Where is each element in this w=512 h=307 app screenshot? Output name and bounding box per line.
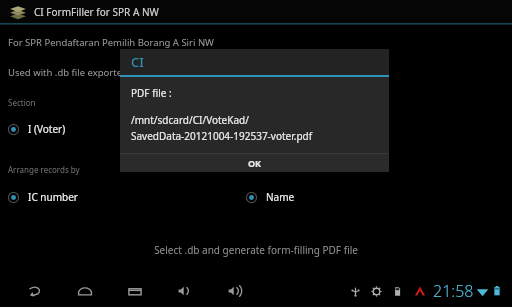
staticText: For SPR Pendaftaran Pemilih Borang A Sir… bbox=[8, 36, 214, 49]
staticText: PDF file : bbox=[131, 86, 172, 100]
button[interactable]: Volume down bbox=[172, 278, 198, 304]
staticText: IC number bbox=[28, 190, 78, 204]
button[interactable]: Back bbox=[22, 278, 48, 304]
button[interactable]: Home bbox=[72, 278, 98, 304]
staticText: 21:58 bbox=[433, 280, 474, 302]
staticText: SavedData-20121004-192537-voter.pdf bbox=[131, 129, 313, 143]
button[interactable]: I (Voter) bbox=[0, 120, 74, 138]
staticText: OK bbox=[248, 157, 262, 169]
staticText: /mnt/sdcard/CI/VoteKad/ bbox=[131, 113, 249, 127]
staticText: Used with .db file exported from CI Vote… bbox=[8, 66, 204, 79]
button[interactable]: Recent apps bbox=[122, 278, 148, 304]
button[interactable]: OK bbox=[120, 154, 389, 172]
staticText: Arrange records by bbox=[8, 164, 80, 175]
button[interactable]: IC number bbox=[0, 188, 86, 206]
button[interactable]: Name bbox=[238, 188, 303, 206]
staticText: I (Voter) bbox=[28, 122, 66, 136]
staticText: CI FormFiller for SPR A NW bbox=[34, 5, 159, 19]
staticText: Section bbox=[8, 97, 36, 108]
staticText: Select .db and generate form-filling PDF… bbox=[0, 243, 512, 257]
staticText: Name bbox=[266, 190, 295, 204]
button[interactable]: Volume up bbox=[222, 278, 248, 304]
staticText: CI bbox=[131, 53, 144, 71]
